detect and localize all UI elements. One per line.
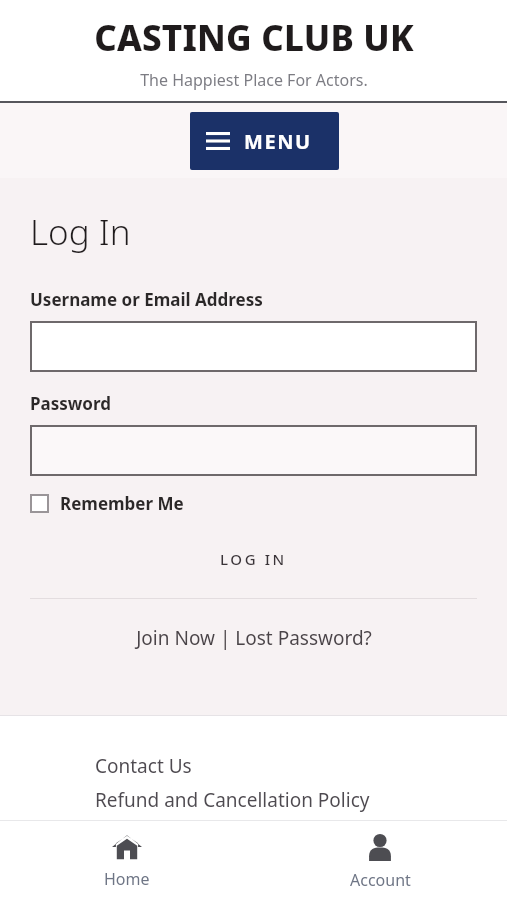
staticText: Join Now | Lost Password? [136,625,372,651]
button[interactable]: MENU [190,112,339,170]
button[interactable]: Refund and Cancellation Policy [95,787,370,813]
staticText: Home [104,868,150,890]
staticText: Account [350,869,411,891]
staticText: CASTING CLUB UK [94,14,414,62]
button[interactable] [30,425,477,476]
button[interactable]: Account [253,820,507,900]
button[interactable]: Join Now | Lost Password? [30,625,477,651]
button[interactable]: Remember Me [30,492,184,515]
staticText: Log In [30,208,131,256]
staticText: Remember Me [60,492,184,515]
button[interactable]: Home [0,820,253,900]
staticText: MENU [244,128,312,155]
staticText: LOG IN [220,549,287,569]
staticText: Password [30,392,111,415]
button[interactable] [30,321,477,372]
button[interactable]: Contact Us [95,753,192,779]
staticText: Username or Email Address [30,288,263,311]
staticText: The Happiest Place For Actors. [140,69,368,91]
button[interactable]: LOG IN [30,541,477,577]
